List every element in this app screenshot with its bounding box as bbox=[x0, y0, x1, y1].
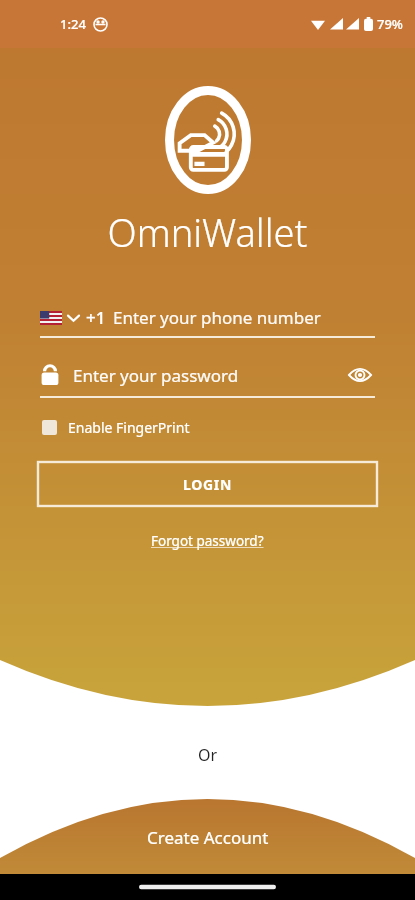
staticText: Enter your phone number bbox=[113, 306, 321, 329]
button[interactable]: Enter your password bbox=[40, 360, 375, 398]
staticText: Enable FingerPrint bbox=[68, 418, 190, 437]
staticText: Create Account bbox=[147, 826, 269, 849]
button[interactable]: +1 bbox=[40, 306, 375, 338]
button[interactable]: Show password bbox=[345, 360, 375, 390]
button[interactable]: Enable FingerPrint bbox=[40, 415, 192, 440]
staticText: Enter your password bbox=[73, 364, 345, 387]
button[interactable]: LOGIN bbox=[38, 462, 377, 506]
staticText: +1 bbox=[86, 306, 106, 329]
button[interactable]: Create Account bbox=[0, 812, 415, 862]
staticText: 1:24 bbox=[60, 15, 86, 33]
staticText: LOGIN bbox=[183, 475, 233, 494]
staticText: OmniWallet bbox=[0, 206, 415, 258]
staticText: Or bbox=[0, 744, 415, 766]
staticText: 79% bbox=[377, 15, 403, 33]
button[interactable]: Forgot password? bbox=[147, 528, 268, 554]
